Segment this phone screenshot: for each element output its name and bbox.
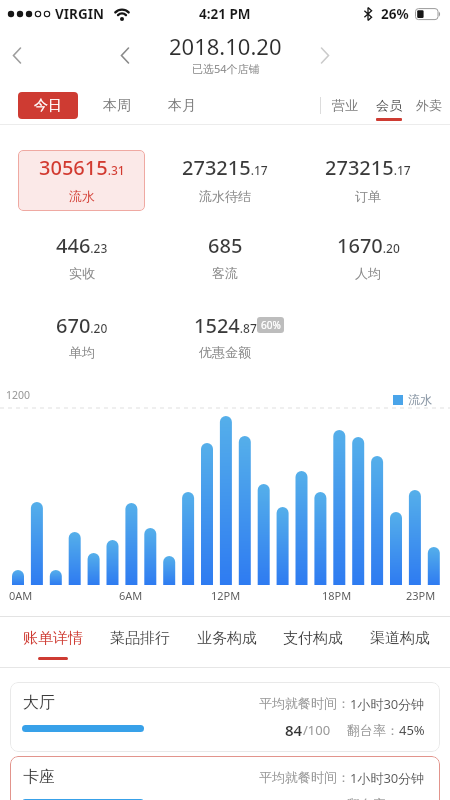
staticText: 0AM [9,588,33,603]
staticText: 平均就餐时间： [259,695,350,711]
staticText: 本周 [103,97,131,115]
staticText: 2018.10.20 [169,31,282,61]
button[interactable]: 账单详情 [15,625,91,651]
button[interactable]: 菜品排行 [102,625,178,651]
staticText: 大厅 [23,693,55,713]
button[interactable] [18,150,145,211]
staticText: 实收 [69,265,95,281]
staticText: 1670.20 [337,232,400,258]
button[interactable] [312,40,338,70]
staticText: 已选54个店铺 [192,61,260,76]
staticText: 685 [208,232,243,258]
staticText: 营业 [332,97,358,113]
button[interactable]: 本周 [95,92,139,119]
button[interactable]: 会员 [369,94,409,116]
staticText: 4:21 PM [199,5,251,23]
button[interactable] [112,40,138,70]
staticText: 业务构成 [197,629,257,648]
staticText: 18PM [322,588,352,603]
staticText: 账单详情 [23,629,83,648]
button[interactable]: 本月 [160,92,204,119]
staticText: 支付构成 [283,629,343,648]
staticText: 订单 [355,188,381,204]
staticText: 60% [261,318,281,332]
staticText: 优惠金额 [199,344,251,360]
staticText: 外卖 [416,97,442,113]
staticText: VIRGIN [55,5,104,23]
staticText: 人均 [355,265,381,281]
staticText: 流水待结 [199,188,251,204]
staticText: 12PM [211,588,241,603]
staticText: 1524.87 [194,312,257,338]
staticText: 会员 [376,97,402,113]
staticText: 84 [285,720,303,740]
button[interactable]: 大厅 [10,682,440,752]
staticText: 6AM [119,588,143,603]
staticText: 1小时30分钟 [350,695,425,713]
button[interactable]: 业务构成 [189,625,265,651]
staticText: 273215.17 [182,154,268,180]
staticText: /100 [303,721,331,739]
button[interactable]: 渠道构成 [362,625,438,651]
staticText: 翻台率： [347,796,399,800]
staticText: 26% [381,5,409,23]
staticText: 今日 [34,97,62,115]
staticText: 1200 [6,388,31,402]
staticText: 流水 [69,188,95,204]
staticText: 翻台率： [347,722,399,738]
staticText: 本月 [168,97,196,115]
staticText: 23PM [406,588,436,603]
button[interactable]: 卡座 [10,756,440,800]
staticText: 670.20 [56,312,108,338]
staticText: 305615.31 [39,154,125,180]
staticText: 273215.17 [325,154,411,180]
staticText: 菜品排行 [110,629,170,648]
button[interactable]: 外卖 [409,94,449,116]
staticText: 渠道构成 [370,629,430,648]
button[interactable]: 支付构成 [275,625,351,651]
staticText: 446.23 [56,232,108,258]
staticText: 卡座 [23,767,55,787]
staticText: 45% [399,721,425,739]
button[interactable]: 今日 [18,92,78,119]
button[interactable] [4,40,30,70]
staticText: 单均 [69,344,95,360]
staticText: 流水 [408,392,432,407]
staticText: 客流 [212,265,238,281]
button[interactable]: 营业 [325,94,365,116]
staticText: 1小时30分钟 [350,769,425,787]
staticText: 平均就餐时间： [259,769,350,785]
